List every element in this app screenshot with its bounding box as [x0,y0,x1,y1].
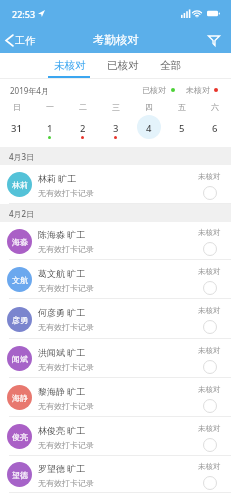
staticText: 未核对 [198,228,221,237]
staticText: 未核对 [198,462,221,471]
staticText: 5 [179,122,185,135]
staticText: 无有效打卡记录 [38,322,94,332]
staticText: 陈海淼 旷工 [38,228,86,240]
staticText: 黎海静 旷工 [38,385,86,397]
staticText: 无有效打卡记录 [38,401,94,411]
button[interactable]: 文航 [0,260,231,299]
staticText: 未核对 [198,385,221,394]
staticText: 彦勇 [12,315,28,325]
button[interactable]: Filter [208,35,231,46]
staticText: 考勤核对 [93,33,139,47]
staticText: 日 [13,102,21,111]
staticText: 闻斌 [12,354,28,364]
button[interactable]: 未核对 [48,53,92,79]
button[interactable]: 海淼 [0,222,231,260]
button[interactable]: 林莉 [0,165,231,204]
button[interactable]: 4 [132,115,165,140]
button[interactable]: 海静 [0,378,231,417]
staticText: 22:53 [12,8,36,20]
staticText: 一 [46,102,54,111]
staticText: 已核对 [107,59,139,72]
staticText: 无有效打卡记录 [38,188,94,198]
staticText: 洪闻斌 旷工 [38,346,86,358]
staticText: 4月2日 [9,208,35,219]
staticText: 已核对 [142,85,166,95]
button[interactable]: 工作 [0,34,41,47]
button[interactable]: 1 [33,115,66,140]
staticText: 未核对 [198,346,221,355]
button[interactable]: 望德 [0,456,231,493]
staticText: 海淼 [12,237,28,247]
button[interactable]: 已核对 [101,53,145,79]
staticText: 2 [80,122,86,135]
staticText: 4月3日 [9,151,35,162]
staticText: 罗望德 旷工 [38,462,86,474]
staticText: 未核对 [198,306,221,315]
staticText: 六 [211,102,219,111]
staticText: 无有效打卡记录 [38,440,94,450]
staticText: 俊亮 [12,432,28,442]
staticText: 工作 [15,34,35,47]
staticText: 3 [113,122,119,135]
staticText: 31 [11,122,22,135]
staticText: 无有效打卡记录 [38,244,94,254]
button[interactable]: 2 [66,115,99,140]
button[interactable]: 闻斌 [0,339,231,378]
staticText: 葛文航 旷工 [38,267,86,279]
button[interactable]: 6 [198,115,231,140]
staticText: 未核对 [54,59,86,72]
staticText: 海静 [12,393,28,403]
staticText: 1 [47,122,53,135]
staticText: 未核对 [198,424,221,433]
staticText: 无有效打卡记录 [38,478,94,488]
staticText: 6 [212,122,218,135]
staticText: 无有效打卡记录 [38,362,94,372]
staticText: 全部 [160,59,181,72]
staticText: 五 [178,102,186,111]
button[interactable]: 31 [0,115,33,140]
staticText: 林莉 旷工 [38,172,77,184]
staticText: 望德 [12,470,28,480]
staticText: 林俊亮 旷工 [38,424,86,436]
staticText: 未核对 [186,85,210,95]
staticText: 何彦勇 旷工 [38,306,86,318]
staticText: 未核对 [198,172,221,181]
button[interactable]: 3 [99,115,132,140]
button[interactable]: 全部 [153,53,187,79]
staticText: 文航 [12,275,28,285]
staticText: 未核对 [198,267,221,276]
staticText: 四 [145,102,153,111]
staticText: 三 [112,102,120,111]
button[interactable]: 彦勇 [0,299,231,339]
button[interactable]: 5 [165,115,198,140]
staticText: 4 [146,122,152,135]
staticText: 林莉 [12,180,28,190]
button[interactable]: 俊亮 [0,417,231,456]
staticText: 2019年4月 [10,85,49,95]
staticText: 无有效打卡记录 [38,283,94,293]
staticText: 二 [79,102,87,111]
